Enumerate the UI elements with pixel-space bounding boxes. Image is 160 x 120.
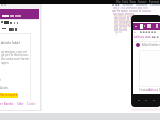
button[interactable]: Vai a inquire <box>0 93 18 98</box>
staticText: ras ve nu <box>114 26 127 30</box>
staticText: File Edit View Insert Format Tools <box>116 0 160 4</box>
staticText: ut tempor, cras vel <box>1 50 27 54</box>
staticText: ← ▪ ▪ ▪ ▪ ▪ ▪ <box>134 30 156 34</box>
button[interactable]: er Bandis <box>0 102 14 106</box>
button[interactable]: Filters <box>0 27 30 32</box>
button[interactable] <box>0 9 39 19</box>
button[interactable]: Recents <box>153 99 156 102</box>
staticText: Conte <box>27 102 36 106</box>
staticText: gli per le dictim.utu <box>1 53 29 57</box>
staticText: iss nomi ut re <box>114 18 134 22</box>
staticText: vac num la io <box>114 16 133 20</box>
staticText: er Bandis <box>0 102 14 106</box>
button[interactable]: Home <box>145 99 148 102</box>
staticText: i <box>0 78 1 82</box>
button[interactable]: Back <box>138 99 141 102</box>
staticText: nu la <box>115 30 122 34</box>
button[interactable]: Search <box>144 24 146 28</box>
button[interactable]: Address bar <box>133 35 160 40</box>
staticText: val x = ui.verbum.ma ion <box>113 6 148 10</box>
button[interactable]: Sitbr <box>17 102 24 106</box>
staticText: Contact <box>139 88 150 92</box>
staticText: Mitzi Kohler mic <box>142 43 160 47</box>
button[interactable]: Kaltura Docu <box>148 88 160 92</box>
staticText: ris me io ul ra <box>114 14 134 18</box>
button[interactable]: Conte <box>27 102 36 106</box>
button[interactable]: Tabs <box>147 23 152 30</box>
staticText: ▪ ▪▪ Screen Transfer Canvas Sol <box>112 3 160 7</box>
staticText: Audio <box>0 86 9 90</box>
staticText: rus vom la in <box>114 22 133 26</box>
staticText: Article label <box>1 40 20 45</box>
staticText: } <box>116 32 118 36</box>
staticText: du conta cum lorem <box>1 57 30 61</box>
button[interactable] <box>139 50 160 87</box>
staticText: Sitbr <box>17 102 24 106</box>
staticText: var fa nom: ra scul le mo nu <box>112 9 152 13</box>
staticText: Vai a inquire <box>0 93 18 97</box>
staticText: ispen <box>1 61 9 65</box>
staticText: Kaltura Docu <box>148 88 160 92</box>
staticText: — ▪▪ ▪ <box>147 35 159 39</box>
staticText: ver io mali u <box>114 20 132 24</box>
button[interactable]: Cast <box>140 23 144 30</box>
staticText: ver io ma <box>114 28 128 32</box>
button[interactable]: More options <box>155 23 159 30</box>
staticText: ver io mu la <box>114 24 131 28</box>
button[interactable]: Mitzi Kohler mic <box>133 42 160 49</box>
button[interactable]: Browser tab <box>0 3 9 9</box>
button[interactable]: Menu <box>135 25 138 28</box>
button[interactable]: Navigation controls <box>133 31 160 35</box>
button[interactable]: Contact <box>139 88 150 92</box>
staticText: kaltura.com <box>134 35 151 39</box>
staticText: iss num vio ma <box>113 12 135 16</box>
button[interactable]: Toolbar <box>0 20 30 26</box>
